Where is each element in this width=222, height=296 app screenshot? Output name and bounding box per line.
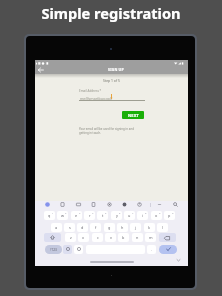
staticText: g	[108, 225, 111, 230]
staticText: Email Address *	[79, 89, 102, 93]
button[interactable]: Shift	[44, 233, 61, 242]
button[interactable]: b	[118, 233, 129, 242]
staticText: e	[75, 213, 78, 218]
button[interactable]: j	[130, 223, 141, 232]
button[interactable]: Keyboard tool 3	[75, 201, 81, 207]
button[interactable]: Keyboard tool 6	[121, 201, 127, 207]
staticText: Step 1 of 5	[35, 78, 188, 83]
button[interactable]: n	[132, 233, 143, 242]
button[interactable]: .	[147, 245, 156, 254]
staticText: m	[149, 235, 153, 240]
button[interactable]: y	[111, 211, 122, 220]
button[interactable]: r	[84, 211, 95, 220]
button[interactable]: Language	[74, 245, 83, 254]
button[interactable]: q	[44, 211, 55, 220]
staticText: y	[116, 213, 118, 218]
staticText: n	[136, 235, 139, 240]
button[interactable]: l	[157, 223, 168, 232]
button[interactable]: s	[64, 223, 75, 232]
button[interactable]: t	[97, 211, 108, 220]
button[interactable]: Keyboard tool 7	[136, 201, 142, 207]
button[interactable]: Emoji	[63, 245, 72, 254]
button[interactable]: i	[137, 211, 148, 220]
button[interactable]: p	[164, 211, 175, 220]
button[interactable]: w	[57, 211, 68, 220]
staticText: 3	[79, 211, 81, 214]
button[interactable]: a	[51, 223, 62, 232]
staticText: h	[121, 225, 124, 230]
staticText: b	[122, 235, 125, 240]
staticText: o	[155, 213, 158, 218]
staticText: SIGN UP	[108, 67, 124, 72]
button[interactable]: m	[145, 233, 156, 242]
staticText: w	[61, 213, 64, 218]
button[interactable]: h	[117, 223, 128, 232]
staticText: c	[97, 235, 99, 240]
other: Hide keyboard	[176, 258, 181, 262]
staticText: f	[95, 225, 97, 230]
button[interactable]: Back	[37, 66, 45, 74]
staticText: NEXT	[128, 113, 139, 118]
staticText: Simple registration	[41, 3, 181, 23]
button[interactable]: z	[65, 233, 76, 242]
button[interactable]: k	[144, 223, 155, 232]
staticText: u	[128, 213, 131, 218]
staticText: 7	[132, 211, 134, 214]
button[interactable]: Keyboard tool 2	[59, 201, 65, 207]
button[interactable]: d	[77, 223, 88, 232]
staticText: me@smartbuy.golf	[80, 96, 113, 101]
staticText: 6	[119, 211, 121, 214]
button[interactable]: f	[90, 223, 101, 232]
staticText: s	[69, 225, 71, 230]
button[interactable]: NEXT	[122, 111, 144, 119]
staticText: k	[148, 225, 151, 230]
staticText: z	[70, 235, 72, 240]
button[interactable]: Enter	[159, 245, 177, 254]
button[interactable]: g	[104, 223, 115, 232]
staticText: 4	[92, 211, 94, 214]
staticText: 8	[145, 211, 147, 214]
staticText: 9	[159, 211, 161, 214]
staticText: Your email will be used for signing in a…	[79, 127, 134, 135]
staticText: 5	[105, 211, 107, 214]
staticText: v	[110, 235, 112, 240]
staticText: 1	[52, 211, 54, 214]
staticText: t	[102, 213, 104, 218]
staticText: 2	[65, 211, 67, 214]
button[interactable]: u	[124, 211, 135, 220]
staticText: j	[135, 225, 136, 230]
staticText: p	[168, 213, 171, 218]
staticText: a	[55, 225, 58, 230]
button[interactable]: Backspace	[159, 233, 176, 242]
button[interactable]: Keyboard tool 5	[106, 201, 112, 207]
staticText: d	[81, 225, 84, 230]
button[interactable]: c	[92, 233, 103, 242]
button[interactable]: ?123	[45, 245, 62, 254]
button[interactable]: Keyboard tool 8	[156, 201, 162, 207]
staticText: x	[82, 235, 85, 240]
staticText: l	[162, 225, 163, 230]
button[interactable]: e	[71, 211, 82, 220]
button[interactable]: v	[105, 233, 116, 242]
staticText: q	[48, 213, 51, 218]
staticText: r	[89, 213, 91, 218]
staticText: 0	[172, 211, 174, 214]
staticText: ?123	[50, 248, 57, 252]
button[interactable]: Keyboard tool 9	[172, 201, 178, 207]
button[interactable]: o	[151, 211, 162, 220]
staticText: i	[142, 213, 143, 218]
staticText: .	[151, 247, 153, 252]
button[interactable]: x	[78, 233, 89, 242]
button[interactable]: Keyboard tool 4	[90, 201, 96, 207]
button[interactable]: Keyboard tool 1	[44, 201, 50, 207]
